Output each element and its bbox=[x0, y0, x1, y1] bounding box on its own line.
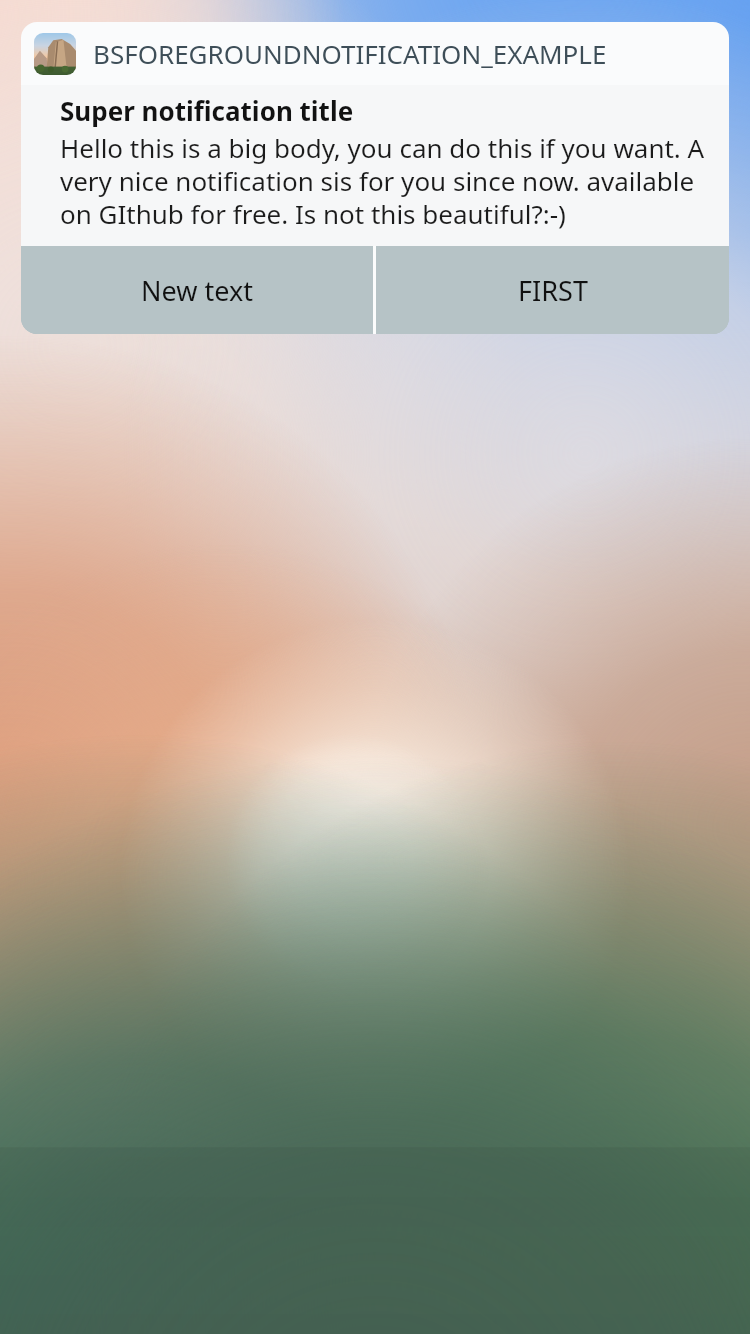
staticText: FIRST bbox=[518, 272, 588, 309]
staticText: BSFOREGROUNDNOTIFICATION_EXAMPLE bbox=[93, 36, 607, 71]
staticText: New text bbox=[141, 272, 253, 309]
button[interactable]: FIRST bbox=[376, 246, 729, 334]
button[interactable]: BSFOREGROUNDNOTIFICATION_EXAMPLE bbox=[21, 22, 729, 85]
staticText: Super notification title bbox=[60, 93, 354, 128]
button[interactable]: New text bbox=[21, 246, 373, 334]
button[interactable]: Super notification title bbox=[21, 85, 729, 246]
staticText: Hello this is a big body, you can do thi… bbox=[60, 130, 705, 232]
